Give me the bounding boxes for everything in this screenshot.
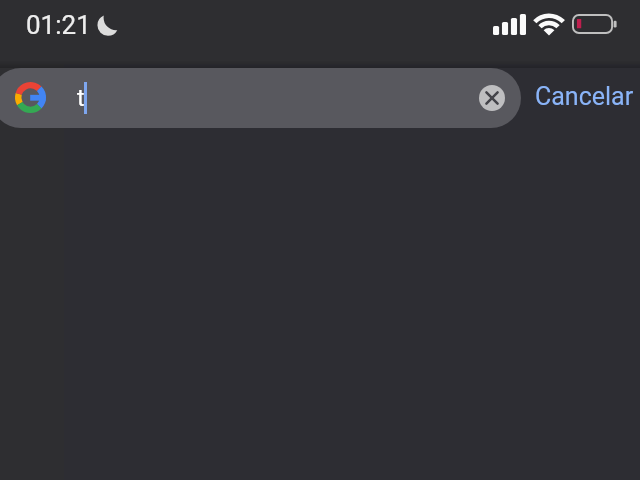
button[interactable]: t	[0, 68, 521, 128]
staticText: t	[77, 85, 85, 112]
button[interactable]: Cancelar	[527, 66, 640, 126]
staticText: 01:21	[26, 10, 91, 40]
button[interactable]: Clear search	[479, 85, 505, 111]
staticText: Cancelar	[535, 82, 634, 111]
